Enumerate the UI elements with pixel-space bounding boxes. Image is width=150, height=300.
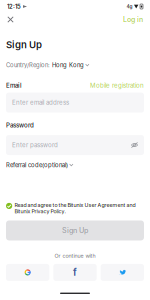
staticText: Email	[6, 82, 22, 89]
staticText: Enter password	[12, 141, 58, 149]
button[interactable]: Referral code(optional)	[0, 155, 150, 170]
staticText: 4g	[126, 4, 132, 9]
staticText: Mobile registration	[90, 82, 144, 89]
staticText: Password	[6, 122, 34, 129]
button[interactable]: Close	[1, 13, 20, 26]
button[interactable]: Enter email address	[0, 90, 150, 113]
staticText: Enter email address	[12, 99, 69, 106]
staticText: f	[73, 267, 77, 278]
staticText: 12:15	[7, 3, 21, 10]
staticText: Sign Up	[6, 39, 42, 51]
button[interactable]: Continue with Google	[6, 264, 49, 281]
staticText: Referral code(optional)	[6, 161, 68, 169]
button[interactable]: Continue with Twitter	[101, 264, 144, 281]
button[interactable]: Continue with Facebook	[53, 264, 97, 281]
button[interactable]: Log in	[117, 12, 149, 27]
button[interactable]: Mobile registration	[90, 82, 144, 89]
staticText: Country/Region:	[6, 62, 50, 69]
staticText: Hong Kong	[50, 62, 84, 69]
staticText: Read and agree to the Bitunix User Agree…	[15, 202, 136, 214]
button[interactable]: Sign Up	[0, 214, 150, 240]
button[interactable]: Enter password	[0, 129, 150, 155]
button[interactable]: Country/Region:	[0, 51, 150, 71]
staticText: Log in	[123, 15, 143, 24]
staticText: Sign Up	[62, 226, 88, 235]
staticText: Or continue with	[54, 252, 95, 259]
button[interactable]: Agree	[6, 203, 12, 209]
